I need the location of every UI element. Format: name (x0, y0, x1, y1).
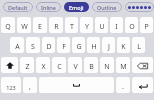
staticText: Emoji (69, 4, 84, 11)
staticText: T (70, 22, 74, 32)
button[interactable]: H (87, 37, 100, 53)
staticText: U (99, 22, 105, 32)
button[interactable]: R (49, 17, 63, 33)
button[interactable]: Default (3, 2, 33, 12)
staticText: B (89, 62, 94, 72)
button[interactable]: Y (80, 17, 93, 33)
button[interactable]: G (72, 37, 85, 53)
button[interactable]: L (132, 37, 145, 53)
button[interactable]: C (52, 57, 66, 73)
button[interactable]: , (23, 77, 37, 93)
staticText: S (31, 42, 35, 52)
button[interactable]: S (26, 37, 40, 53)
button[interactable]: Outline (92, 2, 122, 12)
staticText: Y (85, 22, 89, 32)
staticText: D (46, 42, 52, 52)
button[interactable]: Return (132, 77, 153, 93)
staticText: C (57, 62, 62, 72)
button[interactable]: A (10, 37, 24, 53)
staticText: . (122, 82, 124, 92)
button[interactable]: Backspace (132, 57, 153, 73)
button[interactable]: W (17, 17, 31, 33)
button[interactable]: Shift (1, 57, 18, 73)
button[interactable]: Inline (36, 2, 61, 12)
button[interactable]: J (102, 37, 115, 53)
staticText: I (115, 22, 118, 32)
staticText: G (76, 42, 82, 52)
button[interactable]: Space (39, 77, 114, 93)
staticText: W (21, 22, 28, 32)
button[interactable]: Z (20, 57, 34, 73)
staticText: M (120, 62, 127, 72)
staticText: O (129, 22, 135, 32)
staticText: Default (8, 4, 28, 11)
staticText: Outline (97, 4, 117, 11)
button[interactable]: Q (1, 17, 15, 33)
staticText: R (54, 22, 59, 32)
staticText: F (62, 42, 66, 52)
button[interactable]: N (100, 57, 114, 73)
staticText: , (29, 82, 31, 92)
staticText: X (41, 62, 46, 72)
button[interactable]: U (95, 17, 108, 33)
staticText: H (91, 42, 97, 52)
staticText: K (121, 42, 126, 52)
staticText: L (137, 42, 141, 52)
staticText: E (38, 22, 42, 32)
staticText: N (104, 62, 110, 72)
staticText: Q (5, 22, 11, 32)
staticText: 123 (6, 84, 16, 91)
button[interactable]: P (140, 17, 153, 33)
button[interactable]: F (57, 37, 70, 53)
staticText: V (73, 62, 78, 72)
button[interactable]: E (33, 17, 47, 33)
button[interactable]: V (68, 57, 82, 73)
button[interactable]: I (110, 17, 123, 33)
button[interactable]: Emoji (64, 2, 89, 12)
button[interactable]: X (36, 57, 50, 73)
button[interactable]: More options (125, 2, 154, 12)
button[interactable]: M (116, 57, 130, 73)
staticText: P (144, 22, 149, 32)
button[interactable]: 123 (1, 77, 21, 93)
staticText: Inline (41, 4, 56, 11)
button[interactable]: B (84, 57, 98, 73)
staticText: Z (25, 62, 30, 72)
staticText: A (15, 42, 20, 52)
button[interactable]: . (116, 77, 130, 93)
staticText: J (108, 42, 110, 52)
button[interactable]: O (125, 17, 138, 33)
button[interactable]: D (42, 37, 55, 53)
button[interactable]: T (65, 17, 78, 33)
button[interactable]: K (117, 37, 130, 53)
